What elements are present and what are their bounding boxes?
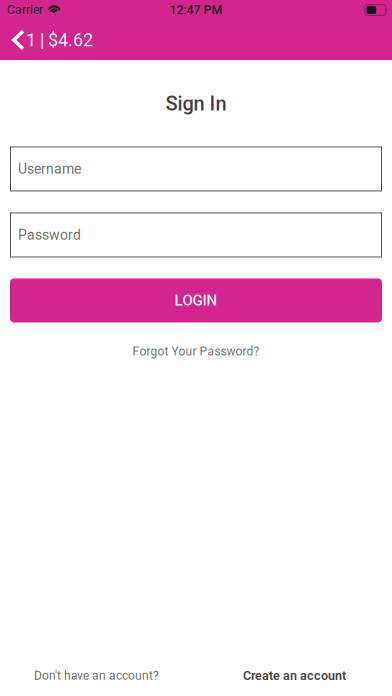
staticText: Don't have an account? xyxy=(34,669,159,683)
button[interactable]: 1 | $4.62 xyxy=(0,20,103,60)
staticText: LOGIN xyxy=(174,292,217,309)
staticText: Sign In xyxy=(165,92,226,115)
staticText: 12:47 PM xyxy=(169,3,222,17)
button[interactable]: LOGIN xyxy=(10,278,382,322)
staticText: Password xyxy=(18,227,81,243)
staticText: 1 | $4.62 xyxy=(26,29,93,51)
staticText: Forgot Your Password? xyxy=(132,344,259,358)
button[interactable]: Create an account xyxy=(243,668,346,683)
staticText: Username xyxy=(18,161,81,177)
button[interactable]: Forgot Your Password? xyxy=(120,339,271,363)
staticText: Carrier xyxy=(7,3,43,17)
staticText: Create an account xyxy=(243,668,346,683)
button[interactable]: Don't have an account? xyxy=(34,669,159,683)
